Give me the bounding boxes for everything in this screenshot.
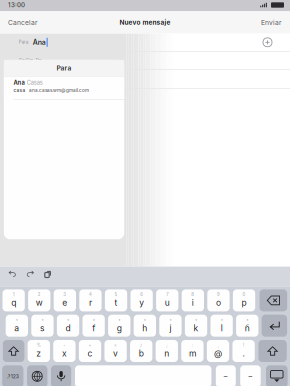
staticText: Ana <box>33 38 46 46</box>
staticText: ana.casas.wm@gmail.com <box>29 87 89 93</box>
button[interactable]: • <box>6 315 28 337</box>
button[interactable]: Return <box>262 315 287 337</box>
button[interactable]: Asunto: <box>0 70 290 88</box>
staticText: 3 <box>63 292 66 297</box>
staticText: p <box>242 298 247 308</box>
button[interactable]: • <box>82 315 105 337</box>
button[interactable]: • <box>57 315 79 337</box>
button[interactable]: • <box>31 315 54 337</box>
button[interactable]: Undo <box>3 267 21 281</box>
button[interactable]: Dictate <box>51 365 71 386</box>
button[interactable]: / <box>130 340 152 362</box>
button[interactable]: Para: <box>0 34 290 51</box>
button[interactable]: % <box>28 340 50 362</box>
staticText: ñ <box>245 323 250 333</box>
button[interactable]: 5 <box>105 289 127 311</box>
staticText: c <box>87 348 92 358</box>
button[interactable]: • <box>236 315 258 337</box>
staticText: . <box>243 348 245 358</box>
button[interactable]: - <box>53 340 76 362</box>
button[interactable]: 1 <box>2 289 25 311</box>
staticText: Para: <box>19 40 29 45</box>
button[interactable]: 7 <box>156 289 178 311</box>
button[interactable]: ; <box>156 340 178 362</box>
button[interactable]: ! <box>232 340 255 362</box>
staticText: – <box>248 372 252 381</box>
staticText: e <box>62 298 67 308</box>
staticText: h <box>142 323 147 333</box>
button[interactable]: 9 <box>207 289 230 311</box>
button[interactable]: Enviar <box>253 13 290 31</box>
button[interactable] <box>75 365 211 386</box>
staticText: Enviar <box>261 18 282 26</box>
button[interactable]: = <box>104 340 127 362</box>
staticText: x <box>62 348 67 358</box>
button[interactable]: Paste <box>40 267 58 281</box>
staticText: 8 <box>191 292 194 297</box>
button[interactable]: Redo <box>21 267 40 281</box>
button[interactable]: Cc/Cco, De: <box>0 52 290 69</box>
staticText: Casas <box>27 79 43 86</box>
button[interactable]: • <box>210 315 233 337</box>
staticText: g <box>117 323 122 333</box>
staticText: w <box>36 298 43 308</box>
staticText: • <box>118 317 120 322</box>
staticText: Para <box>56 64 71 72</box>
button[interactable]: : <box>181 340 204 362</box>
staticText: / <box>140 342 142 348</box>
button[interactable]: – <box>240 365 261 386</box>
button[interactable]: 8 <box>182 289 204 311</box>
button[interactable]: Hide keyboard <box>266 365 288 386</box>
staticText: j <box>169 323 171 333</box>
staticText: @ <box>214 348 222 358</box>
staticText: • <box>169 317 171 322</box>
staticText: ; <box>166 342 167 348</box>
button[interactable]: Shift <box>258 340 287 362</box>
button[interactable]: .?123 <box>2 365 23 386</box>
staticText: • <box>195 317 197 322</box>
staticText: 1 <box>13 292 15 297</box>
staticText: v <box>113 348 118 358</box>
button[interactable]: Shift <box>3 340 24 362</box>
staticText: q <box>11 298 16 308</box>
staticText: d <box>66 323 71 333</box>
button[interactable]: • <box>159 315 182 337</box>
staticText: z <box>36 348 41 358</box>
staticText: Asunto: <box>19 76 35 81</box>
staticText: o <box>216 298 221 308</box>
staticText: - <box>63 342 65 348</box>
staticText: b <box>139 348 144 358</box>
staticText: n <box>164 348 169 358</box>
staticText: y <box>139 298 144 308</box>
staticText: u <box>165 298 170 308</box>
staticText: = <box>114 342 117 348</box>
button[interactable]: , <box>207 340 229 362</box>
button[interactable]: Delete <box>260 289 287 311</box>
button[interactable]: 4 <box>79 289 102 311</box>
button[interactable]: Next keyboard <box>27 365 47 386</box>
button[interactable]: • <box>108 315 130 337</box>
staticText: • <box>246 317 248 322</box>
button[interactable]: • <box>134 315 156 337</box>
staticText: 4 <box>89 292 92 297</box>
button[interactable]: – <box>216 365 236 386</box>
staticText: a <box>14 323 19 333</box>
staticText: 9 <box>217 292 220 297</box>
button[interactable]: Cancelar <box>0 13 46 31</box>
staticText: 2 <box>38 292 41 297</box>
staticText: 7 <box>166 292 168 297</box>
button[interactable]: 6 <box>130 289 153 311</box>
button[interactable]: • <box>185 315 207 337</box>
staticText: Cc/Cco, De: <box>19 58 42 63</box>
staticText: casa <box>13 87 25 93</box>
staticText: Cancelar <box>8 18 38 26</box>
button[interactable]: 0 <box>233 289 255 311</box>
staticText: f <box>92 323 95 333</box>
button[interactable]: Ana <box>4 77 124 99</box>
staticText: • <box>16 317 18 322</box>
button[interactable]: + <box>79 340 101 362</box>
staticText: % <box>37 342 41 348</box>
staticText: • <box>221 317 223 322</box>
button[interactable]: 3 <box>54 289 76 311</box>
button[interactable]: 2 <box>28 289 50 311</box>
